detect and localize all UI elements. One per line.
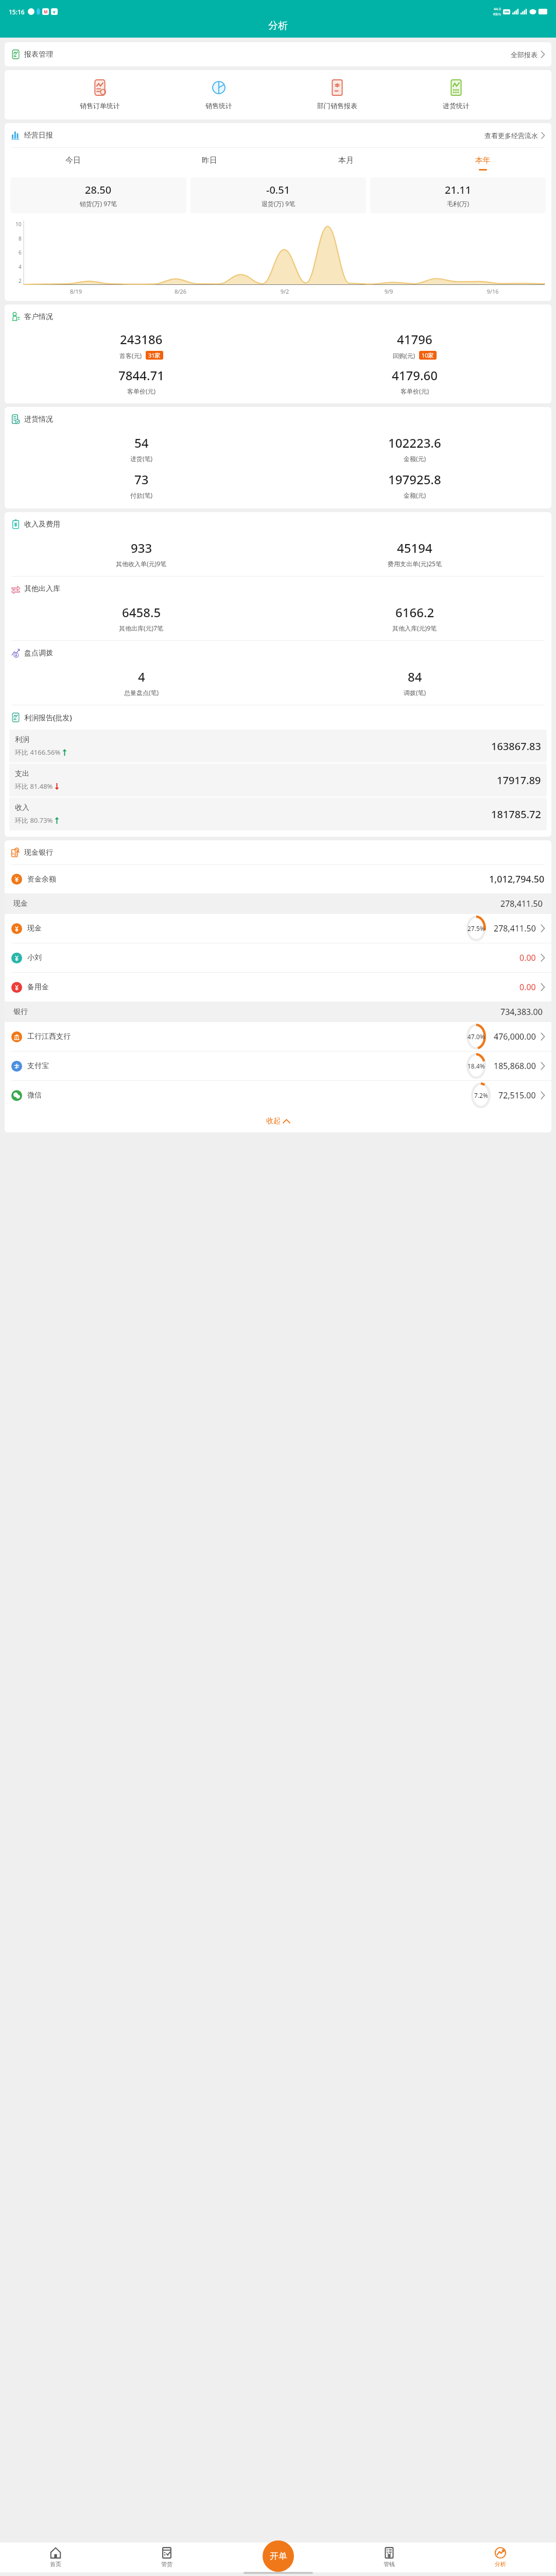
staticText: 17917.89 bbox=[497, 773, 541, 787]
staticText: 盘点调拨 bbox=[24, 649, 53, 658]
staticText: 环比 4166.56% bbox=[15, 748, 61, 757]
staticText: 金额(元) bbox=[404, 454, 426, 463]
staticText: 102223.6 bbox=[388, 434, 441, 451]
button[interactable]: 销售统计 bbox=[196, 78, 242, 112]
staticText: 客单价(元) bbox=[127, 387, 156, 395]
button[interactable]: 进货统计 bbox=[433, 78, 479, 112]
button[interactable]: 197925.8 bbox=[278, 471, 551, 499]
staticText: v bbox=[53, 9, 56, 14]
staticText: -0.51 bbox=[266, 183, 290, 197]
staticText: 6166.2 bbox=[395, 604, 435, 621]
staticText: 181785.72 bbox=[491, 807, 541, 821]
staticText: 10家 bbox=[422, 351, 434, 359]
button[interactable]: -0.51 bbox=[190, 177, 366, 213]
button[interactable]: 管钱 bbox=[334, 2543, 445, 2572]
staticText: 调拨(笔) bbox=[404, 688, 426, 697]
staticText: 8 bbox=[19, 235, 22, 242]
button[interactable]: 73 bbox=[5, 471, 278, 499]
button[interactable]: 21.11 bbox=[370, 177, 546, 213]
button[interactable]: 管货 bbox=[111, 2543, 222, 2572]
staticText: 销售订单统计 bbox=[80, 101, 120, 110]
staticText: 现金 bbox=[27, 924, 42, 933]
button[interactable]: 经营日报 bbox=[5, 123, 551, 147]
staticText: 9/16 bbox=[441, 287, 545, 295]
staticText: 毛利(万) bbox=[447, 199, 470, 208]
staticText: 本年 bbox=[475, 156, 491, 165]
staticText: 278,411.50 bbox=[494, 923, 536, 934]
button[interactable]: 部门销售报表 bbox=[314, 78, 360, 112]
button[interactable]: 41796 bbox=[278, 331, 551, 395]
button[interactable]: 54 bbox=[5, 434, 278, 463]
staticText: 管钱 bbox=[384, 2561, 395, 2568]
staticText: 163867.83 bbox=[491, 739, 541, 753]
staticText: 收入 bbox=[15, 803, 29, 812]
staticText: 31家 bbox=[148, 351, 161, 359]
button[interactable]: 开单 bbox=[263, 2540, 294, 2572]
staticText: 管货 bbox=[161, 2561, 172, 2568]
staticText: 0.00 bbox=[519, 981, 536, 993]
button[interactable]: 现金 bbox=[5, 914, 551, 943]
button[interactable]: 支出 bbox=[9, 764, 547, 796]
staticText: 47.0% bbox=[467, 1032, 485, 1041]
staticText: 933 bbox=[131, 539, 152, 556]
staticText: 6 bbox=[19, 249, 22, 256]
staticText: 昨日 bbox=[202, 156, 217, 165]
button[interactable]: 工行江西支行 bbox=[5, 1022, 551, 1051]
button[interactable]: 28.50 bbox=[10, 177, 186, 213]
button[interactable]: 45194 bbox=[278, 539, 551, 568]
button[interactable]: 昨日 bbox=[141, 154, 277, 173]
staticText: 73 bbox=[134, 471, 149, 488]
staticText: 小刘 bbox=[27, 953, 42, 962]
button[interactable]: 首页 bbox=[0, 2543, 111, 2572]
staticText: 销货(万) 97笔 bbox=[80, 199, 117, 208]
staticText: 支付宝 bbox=[27, 1061, 49, 1071]
button[interactable]: 933 bbox=[5, 539, 278, 568]
staticText: M bbox=[44, 9, 48, 14]
button[interactable]: 本年 bbox=[414, 154, 551, 173]
staticText: 734,383.00 bbox=[500, 1006, 543, 1018]
staticText: 回购(元) bbox=[393, 351, 415, 360]
staticText: 6458.5 bbox=[122, 604, 161, 621]
staticText: 9/9 bbox=[337, 287, 441, 295]
staticText: 476,000.00 bbox=[494, 1031, 536, 1042]
button[interactable]: 分析 bbox=[445, 2543, 556, 2572]
staticText: 8/26 bbox=[128, 287, 233, 295]
button[interactable]: 6166.2 bbox=[278, 604, 551, 632]
button[interactable]: 今日 bbox=[5, 154, 141, 173]
staticText: 环比 80.73% bbox=[15, 816, 53, 825]
staticText: 2 bbox=[19, 277, 22, 284]
staticText: 1,012,794.50 bbox=[489, 873, 545, 886]
button[interactable]: 4 bbox=[5, 668, 278, 697]
staticText: 其他出库(元)7笔 bbox=[119, 624, 164, 632]
button[interactable]: 利润 bbox=[9, 730, 547, 762]
staticText: 费用支出单(元)25笔 bbox=[388, 560, 442, 568]
staticText: 工行江西支行 bbox=[27, 1032, 71, 1041]
button[interactable]: 微信 bbox=[5, 1081, 551, 1110]
button[interactable]: 6458.5 bbox=[5, 604, 278, 632]
staticText: 收入及费用 bbox=[24, 520, 60, 529]
button[interactable]: 收入 bbox=[9, 798, 547, 831]
staticText: 现金 bbox=[13, 899, 28, 908]
staticText: 收起 bbox=[266, 1116, 281, 1126]
button[interactable]: 支付宝 bbox=[5, 1052, 551, 1080]
button[interactable]: 102223.6 bbox=[278, 434, 551, 463]
staticText: 本月 bbox=[338, 156, 354, 165]
button[interactable]: 收起 bbox=[5, 1110, 551, 1132]
staticText: 41796 bbox=[397, 331, 432, 348]
button[interactable]: 小刘 bbox=[5, 943, 551, 972]
staticText: 28.50 bbox=[85, 183, 112, 197]
staticText: 10 bbox=[15, 221, 22, 228]
button[interactable]: 销售订单统计 bbox=[77, 78, 123, 112]
button[interactable]: 资金余额 bbox=[5, 865, 551, 893]
button[interactable]: 备用金 bbox=[5, 973, 551, 1002]
button[interactable]: 84 bbox=[278, 668, 551, 697]
staticText: 客户情况 bbox=[24, 312, 53, 321]
staticText: 44.0 bbox=[494, 7, 501, 12]
button[interactable]: 报表管理 bbox=[5, 42, 551, 66]
staticText: 全部报表 bbox=[511, 50, 537, 59]
staticText: 退货(万) 9笔 bbox=[262, 199, 296, 208]
button[interactable]: 本月 bbox=[277, 154, 414, 173]
staticText: 现金银行 bbox=[24, 848, 53, 857]
button[interactable]: 243186 bbox=[5, 331, 278, 395]
staticText: 8/19 bbox=[24, 287, 128, 295]
